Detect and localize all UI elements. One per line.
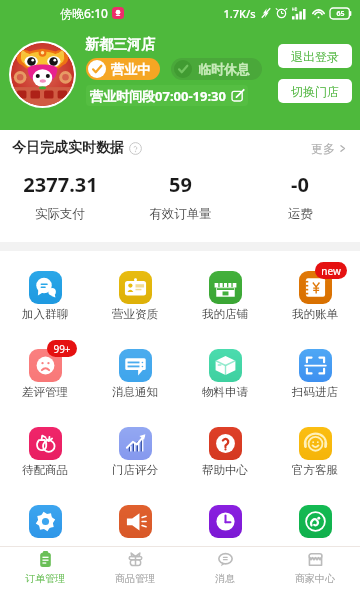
staticText: 2377.31 bbox=[23, 171, 98, 198]
staticText: 退出登录 bbox=[291, 49, 339, 64]
staticText: 59 bbox=[169, 171, 192, 198]
staticText: 订单管理 bbox=[25, 572, 65, 585]
button[interactable]: 待配商品 bbox=[0, 419, 90, 497]
staticText: 商品管理 bbox=[115, 572, 155, 585]
button[interactable]: 差评管理 bbox=[0, 341, 90, 419]
button[interactable] bbox=[0, 497, 90, 575]
staticText: 实际支付 bbox=[35, 206, 85, 222]
staticText: new bbox=[321, 264, 341, 278]
button[interactable] bbox=[270, 497, 360, 575]
button[interactable]: 营业中 bbox=[88, 58, 150, 80]
staticText: 营业时间段07:00-19:30 bbox=[90, 87, 226, 105]
staticText: 消息 bbox=[215, 572, 235, 585]
staticText: 物料申请 bbox=[202, 385, 248, 399]
button[interactable]: 消息 bbox=[180, 547, 270, 600]
staticText: 65 bbox=[336, 9, 345, 19]
button[interactable]: 说明 bbox=[129, 142, 142, 155]
staticText: 临时休息 bbox=[198, 61, 250, 77]
staticText: 扫码进店 bbox=[292, 385, 338, 399]
button[interactable]: 我的账单 bbox=[270, 263, 360, 341]
button[interactable]: -0 bbox=[240, 171, 360, 222]
staticText: 傍晚6:10 bbox=[60, 5, 108, 21]
staticText: 今日完成实时数据 bbox=[12, 139, 124, 157]
button[interactable]: 商品管理 bbox=[90, 547, 180, 600]
staticText: 门店评分 bbox=[112, 463, 158, 477]
button[interactable]: 59 bbox=[120, 171, 240, 222]
button[interactable]: 临时休息 bbox=[174, 58, 250, 80]
staticText: 帮助中心 bbox=[202, 463, 248, 477]
staticText: 切换门店 bbox=[291, 84, 339, 99]
button[interactable]: 退出登录 bbox=[278, 44, 352, 68]
button[interactable]: 消息通知 bbox=[90, 341, 180, 419]
button[interactable]: 门店评分 bbox=[90, 419, 180, 497]
button[interactable]: 商家中心 bbox=[270, 547, 360, 600]
staticText: 有效订单量 bbox=[149, 206, 212, 222]
button[interactable]: 物料申请 bbox=[180, 341, 270, 419]
staticText: 待配商品 bbox=[22, 463, 68, 477]
button[interactable]: 2377.31 bbox=[0, 171, 120, 222]
button[interactable]: 扫码进店 bbox=[270, 341, 360, 419]
button[interactable]: 官方客服 bbox=[270, 419, 360, 497]
button[interactable]: 我的店铺 bbox=[180, 263, 270, 341]
staticText: 加入群聊 bbox=[22, 307, 68, 321]
staticText: 消息通知 bbox=[112, 385, 158, 399]
staticText: 营业资质 bbox=[112, 307, 158, 321]
button[interactable]: 加入群聊 bbox=[0, 263, 90, 341]
button[interactable]: 营业时间段07:00-19:30 bbox=[90, 85, 244, 106]
staticText: 营业中 bbox=[111, 61, 150, 77]
staticText: 99+ bbox=[53, 342, 71, 356]
staticText: -0 bbox=[291, 171, 309, 198]
button[interactable]: 更多 bbox=[311, 141, 348, 156]
staticText: 我的店铺 bbox=[202, 307, 248, 321]
button[interactable]: 订单管理 bbox=[0, 547, 90, 600]
staticText: 新都三河店 bbox=[85, 36, 155, 54]
staticText: 我的账单 bbox=[292, 307, 338, 321]
button[interactable]: 店铺头像 bbox=[11, 43, 74, 106]
staticText: 商家中心 bbox=[295, 572, 335, 585]
staticText: 更多 bbox=[311, 141, 335, 156]
button[interactable]: 营业资质 bbox=[90, 263, 180, 341]
staticText: 官方客服 bbox=[292, 463, 338, 477]
staticText: 1.7K/s bbox=[223, 6, 256, 21]
button[interactable] bbox=[90, 497, 180, 575]
staticText: 差评管理 bbox=[22, 385, 68, 399]
button[interactable]: 帮助中心 bbox=[180, 419, 270, 497]
button[interactable] bbox=[180, 497, 270, 575]
button[interactable]: 切换门店 bbox=[278, 79, 352, 103]
staticText: 运费 bbox=[288, 206, 313, 222]
